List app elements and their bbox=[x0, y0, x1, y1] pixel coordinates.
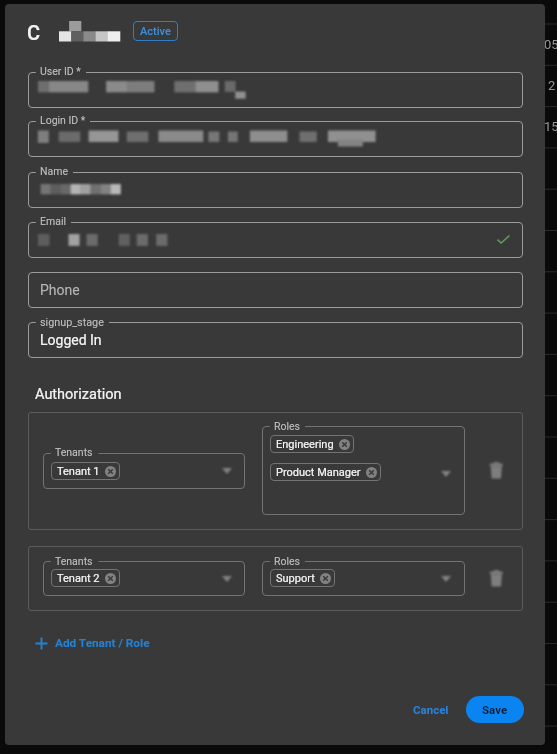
other: Remove Tenant 1 bbox=[105, 466, 116, 477]
staticText: Tenants bbox=[55, 446, 93, 458]
staticText: 05 bbox=[544, 37, 557, 52]
staticText: Add Tenant / Role bbox=[55, 636, 150, 650]
other: Remove Product Manager bbox=[366, 467, 377, 478]
button[interactable]: Product Manager bbox=[276, 463, 377, 481]
other: Add tenant or role bbox=[35, 637, 48, 650]
staticText: Email bbox=[40, 215, 66, 227]
other: Remove Support bbox=[320, 573, 331, 584]
other: Remove Tenant 2 bbox=[105, 573, 116, 584]
staticText: Authorization bbox=[35, 386, 122, 403]
other: Remove Engineering bbox=[339, 439, 350, 450]
button[interactable]: Add tenant or role bbox=[35, 631, 150, 655]
staticText: User ID * bbox=[40, 65, 81, 77]
staticText: Engineering bbox=[276, 438, 334, 451]
staticText: C bbox=[27, 21, 41, 44]
staticText: Roles bbox=[274, 420, 300, 432]
button[interactable]: Cancel bbox=[405, 695, 457, 723]
staticText: Tenant 2 bbox=[57, 572, 100, 585]
staticText: Roles bbox=[274, 555, 300, 567]
button[interactable]: Delete tenant and roles bbox=[483, 456, 509, 482]
staticText: Login ID * bbox=[40, 114, 86, 126]
staticText: Active bbox=[140, 25, 171, 38]
button[interactable]: Tenant 1 bbox=[57, 462, 116, 480]
staticText: Support bbox=[276, 572, 315, 585]
button[interactable]: Delete tenant and roles bbox=[483, 564, 509, 590]
staticText: Save bbox=[482, 703, 508, 716]
staticText: Product Manager bbox=[276, 466, 361, 479]
staticText: 2 bbox=[548, 78, 556, 93]
button[interactable]: Support bbox=[276, 569, 331, 587]
staticText: 15 bbox=[544, 119, 557, 134]
staticText: Tenant 1 bbox=[57, 465, 100, 478]
staticText: Phone bbox=[40, 282, 80, 298]
staticText: Tenants bbox=[55, 555, 93, 567]
button[interactable]: Engineering bbox=[276, 435, 350, 453]
button[interactable]: Save bbox=[466, 696, 524, 723]
staticText: Logged In bbox=[40, 332, 102, 348]
staticText: signup_stage bbox=[40, 316, 104, 329]
staticText: Name bbox=[40, 165, 68, 177]
staticText: Cancel bbox=[413, 703, 449, 716]
button[interactable]: Tenant 2 bbox=[57, 569, 116, 587]
button[interactable]: Active bbox=[133, 21, 178, 41]
